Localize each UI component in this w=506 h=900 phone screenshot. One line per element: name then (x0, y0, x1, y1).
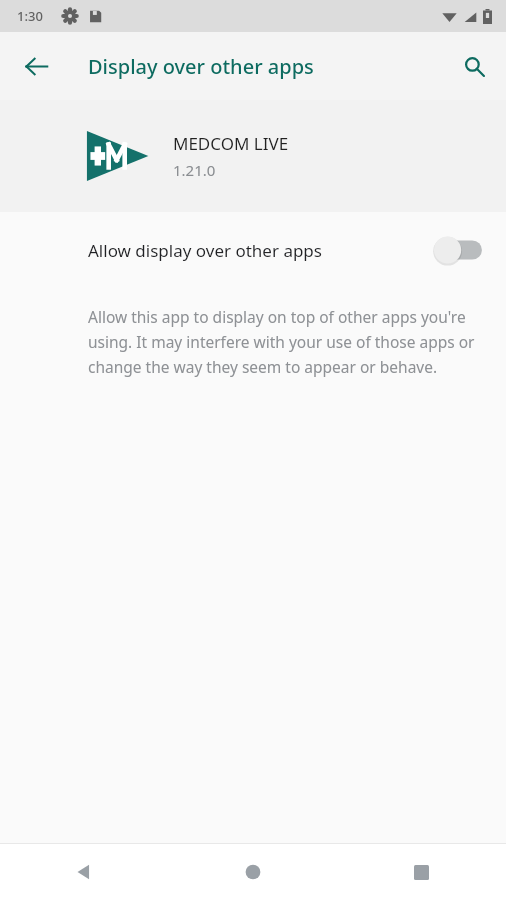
staticText: Allow this app to display on top of othe… (88, 306, 484, 377)
other: Allow display over other apps toggle (432, 233, 484, 267)
button[interactable]: Search (452, 44, 496, 88)
button[interactable]: Recent apps (337, 844, 506, 900)
button[interactable]: Allow display over other apps (0, 212, 506, 288)
staticText: 1.21.0 (173, 160, 216, 180)
staticText: Display over other apps (88, 53, 314, 80)
staticText: Allow display over other apps (88, 239, 322, 262)
staticText: MEDCOM LIVE (173, 132, 289, 155)
staticText: 1:30 (17, 7, 43, 25)
button[interactable]: Back (0, 844, 168, 900)
button[interactable]: Home (168, 844, 337, 900)
button[interactable]: Navigate up (14, 44, 58, 88)
